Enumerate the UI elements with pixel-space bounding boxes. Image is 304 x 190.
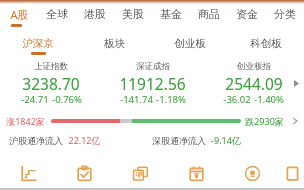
button[interactable]: 涨1842家: [0, 113, 304, 129]
button[interactable]: Fund: [224, 163, 280, 184]
staticText: 分类: [274, 7, 296, 21]
staticText: 美股: [122, 7, 144, 21]
staticText: 涨1842家: [6, 115, 45, 127]
staticText: -9.14亿: [211, 134, 241, 146]
button[interactable]: 创业板: [152, 35, 228, 51]
staticText: 3238.70: [22, 73, 80, 94]
staticText: -0.76%: [52, 93, 82, 106]
staticText: 沪股通净流入: [9, 135, 63, 146]
button[interactable]: 沪股通净流入: [0, 132, 152, 148]
button[interactable]: A股: [0, 3, 38, 25]
button[interactable]: Watchlist: [56, 163, 112, 184]
button[interactable]: Stocks: [112, 163, 168, 184]
staticText: 跌2930家: [245, 115, 284, 127]
button[interactable]: 商品: [190, 3, 228, 25]
staticText: 11912.56: [119, 73, 186, 94]
staticText: 2544.09: [225, 73, 283, 94]
button[interactable]: 基金: [152, 3, 190, 25]
button[interactable]: 创业板指: [203, 58, 304, 106]
button[interactable]: 上证指数: [0, 58, 102, 106]
staticText: 资金: [236, 7, 258, 21]
staticText: 港股: [84, 7, 106, 21]
button[interactable]: 美股: [114, 3, 152, 25]
button[interactable]: 板块: [76, 35, 152, 51]
button[interactable]: Calendar: [168, 163, 224, 184]
button[interactable]: Quotes chart: [0, 163, 56, 184]
staticText: 22.12亿: [68, 134, 101, 146]
staticText: -1.40%: [254, 93, 284, 106]
staticText: 上证指数: [34, 61, 68, 72]
button[interactable]: 深证成指: [102, 58, 203, 106]
staticText: 深股通净流入: [152, 135, 206, 146]
button[interactable]: 深股通净流入: [152, 132, 304, 148]
staticText: -36.02: [223, 93, 251, 106]
button[interactable]: 分类: [266, 3, 304, 25]
staticText: A股: [10, 7, 29, 22]
button[interactable]: 科创板: [228, 35, 304, 51]
button[interactable]: 全球: [38, 3, 76, 25]
staticText: 沪深京: [22, 37, 54, 50]
staticText: 全球: [46, 7, 68, 21]
staticText: 基金: [160, 7, 182, 21]
staticText: -1.18%: [156, 93, 186, 106]
staticText: 板块: [104, 37, 125, 50]
staticText: -141.74: [120, 93, 153, 106]
button[interactable]: 沪深京: [0, 35, 76, 51]
staticText: 创业板: [174, 37, 206, 50]
staticText: 商品: [198, 7, 220, 21]
button[interactable]: More: [280, 163, 304, 184]
staticText: 创业板指: [237, 61, 271, 72]
staticText: 科创板: [250, 37, 282, 50]
staticText: 深证成指: [136, 61, 170, 72]
staticText: -24.71: [21, 93, 49, 106]
button[interactable]: 港股: [76, 3, 114, 25]
button[interactable]: 资金: [228, 3, 266, 25]
button[interactable]: Next: [289, 76, 303, 90]
